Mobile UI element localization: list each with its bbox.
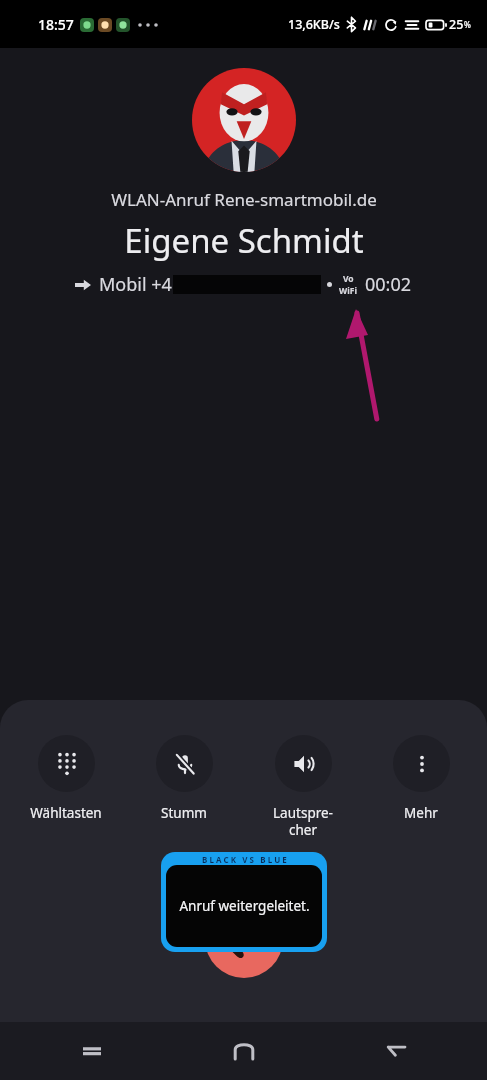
staticText: Lautspre- cher xyxy=(273,804,333,839)
button[interactable]: End call xyxy=(205,900,283,978)
staticText: 00:02 xyxy=(365,272,412,297)
staticText: % xyxy=(464,19,471,30)
staticText: WiFi xyxy=(339,285,357,297)
button[interactable]: Dialpad xyxy=(14,735,118,822)
staticText: Eigene Schmidt xyxy=(124,218,364,263)
staticText: Stumm xyxy=(161,804,207,822)
button[interactable]: Recents xyxy=(70,1029,114,1073)
staticText: 25 xyxy=(449,16,464,33)
button[interactable]: Mute xyxy=(132,735,236,822)
staticText: 18:57 xyxy=(38,15,74,34)
staticText: Vo xyxy=(343,273,354,285)
staticText: Mehr xyxy=(404,804,438,822)
button[interactable]: Home xyxy=(222,1029,266,1073)
button[interactable]: Speaker xyxy=(251,735,355,839)
staticText: 13,6KB/s xyxy=(288,16,340,33)
staticText: B L A C K V S B L U E xyxy=(202,854,287,865)
staticText: Wähltasten xyxy=(30,804,102,822)
staticText: Anruf weitergeleitet. xyxy=(179,897,310,915)
staticText: Mobil +4 xyxy=(99,272,172,297)
button[interactable]: Back xyxy=(373,1029,417,1073)
button[interactable]: More options xyxy=(369,735,473,822)
staticText: WLAN-Anruf Rene-smartmobil.de xyxy=(111,188,377,211)
